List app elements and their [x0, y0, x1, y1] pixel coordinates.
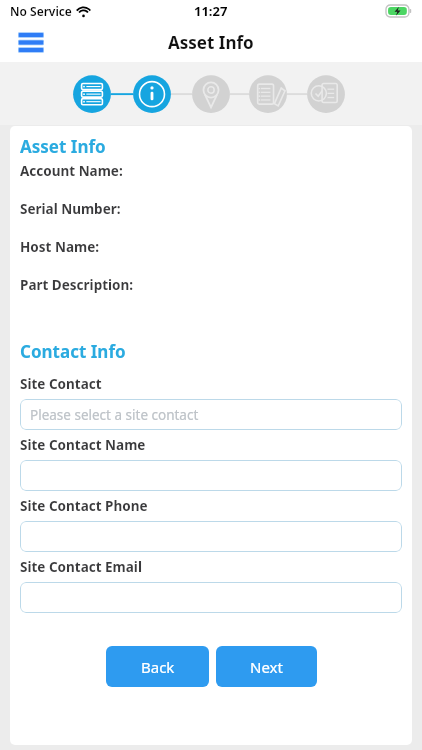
- button[interactable]: [20, 582, 402, 613]
- staticText: Serial Number:: [20, 200, 121, 218]
- staticText: Site Contact: [20, 375, 102, 393]
- staticText: Asset Info: [20, 135, 106, 158]
- staticText: Site Contact Email: [20, 558, 142, 576]
- button[interactable]: Next: [216, 646, 317, 687]
- staticText: Site Contact Phone: [20, 497, 148, 515]
- staticText: Part Description:: [20, 276, 134, 294]
- button[interactable]: Please select a site contact: [20, 399, 402, 430]
- button[interactable]: [20, 521, 402, 552]
- staticText: Contact Info: [20, 340, 126, 363]
- staticText: Host Name:: [20, 238, 99, 256]
- staticText: Asset Info: [168, 31, 254, 54]
- button[interactable]: [20, 460, 402, 491]
- staticText: Back: [141, 657, 175, 677]
- staticText: 11:27: [194, 2, 228, 20]
- staticText: No Service: [10, 3, 72, 19]
- staticText: Please select a site contact: [30, 406, 199, 424]
- staticText: Site Contact Name: [20, 436, 146, 454]
- staticText: Account Name:: [20, 162, 123, 180]
- button[interactable]: Menu: [14, 29, 48, 55]
- staticText: Next: [250, 657, 283, 677]
- button[interactable]: Back: [106, 646, 209, 687]
